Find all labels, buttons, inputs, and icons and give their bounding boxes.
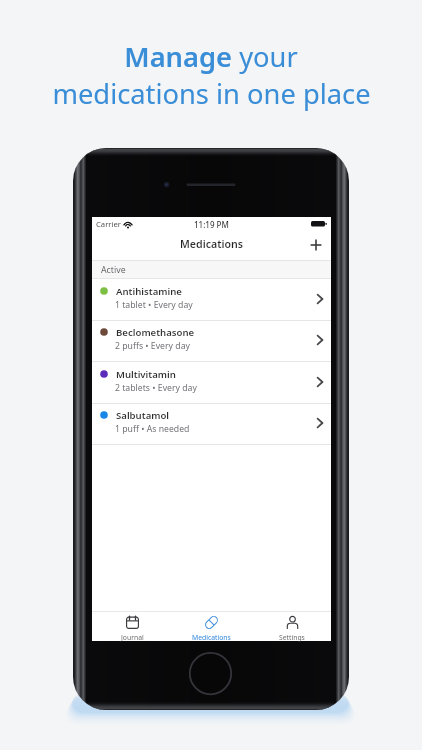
staticText: Multivitamin <box>116 368 176 381</box>
button[interactable]: Salbutamol <box>92 403 331 445</box>
staticText: Medications <box>192 633 231 642</box>
staticText: Settings <box>279 633 305 642</box>
staticText: 1 tablet • Every day <box>115 299 193 311</box>
staticText: Beclomethasone <box>116 326 195 339</box>
button[interactable]: Journal <box>98 611 166 641</box>
button[interactable]: Beclomethasone <box>92 320 331 362</box>
staticText: Antihistamine <box>116 285 182 298</box>
staticText: 2 tablets • Every day <box>115 382 197 394</box>
staticText: Active <box>101 264 126 276</box>
button[interactable]: Settings <box>258 611 326 641</box>
staticText: Carrier <box>96 219 122 229</box>
staticText: medications in one place <box>52 75 371 112</box>
staticText: Medications <box>180 237 244 251</box>
button[interactable]: Multivitamin <box>92 362 331 404</box>
staticText: 1 puff • As needed <box>115 423 190 435</box>
staticText: 11:19 PM <box>194 219 229 230</box>
staticText: Journal <box>121 633 144 642</box>
staticText: Manage your <box>124 38 298 75</box>
staticText: 2 puffs • Every day <box>115 340 190 352</box>
button[interactable]: Add medication <box>305 234 327 256</box>
button[interactable]: Antihistamine <box>92 279 331 321</box>
staticText: Salbutamol <box>116 409 170 422</box>
button[interactable]: Medications <box>177 611 245 641</box>
